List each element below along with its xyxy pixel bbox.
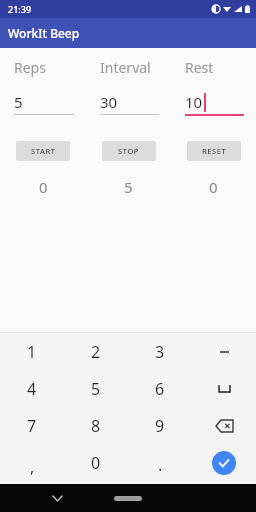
button[interactable]: Done <box>192 444 256 481</box>
staticText: Rest <box>185 58 214 77</box>
button[interactable]: RESET <box>187 141 241 161</box>
staticText: 10 <box>185 92 203 112</box>
staticText: 9 <box>155 415 165 437</box>
staticText: 0 <box>91 452 101 474</box>
staticText: 0 <box>39 177 48 197</box>
staticText: 4 <box>27 378 37 400</box>
button[interactable]: 8 <box>64 407 128 444</box>
staticText: Reps <box>14 58 46 77</box>
staticText: 3 <box>155 341 165 363</box>
button[interactable]: Comma <box>0 444 64 481</box>
staticText: 0 <box>209 177 218 197</box>
staticText: 1 <box>27 341 37 363</box>
staticText: 5 <box>124 177 133 197</box>
button[interactable]: Backspace <box>192 407 256 444</box>
staticText: Interval <box>100 58 151 77</box>
staticText: RESET <box>202 146 227 156</box>
button[interactable]: Dash <box>192 333 256 370</box>
button[interactable]: 2 <box>64 333 128 370</box>
staticText: . <box>158 454 163 476</box>
staticText: WorkIt Beep <box>8 25 80 41</box>
staticText: 30 <box>100 92 118 112</box>
staticText: 7 <box>27 415 37 437</box>
staticText: START <box>31 146 56 156</box>
staticText: , <box>30 456 35 478</box>
button[interactable]: 4 <box>0 370 64 407</box>
button[interactable]: 5 <box>64 370 128 407</box>
button[interactable]: START <box>16 141 70 161</box>
staticText: 2 <box>91 341 101 363</box>
staticText: 21:39 <box>8 3 32 15</box>
button[interactable]: Space <box>192 370 256 407</box>
button[interactable]: Hide keyboard <box>48 489 66 507</box>
button[interactable]: Period <box>128 444 192 481</box>
staticText: 8 <box>91 415 101 437</box>
staticText: 5 <box>91 378 101 400</box>
staticText: STOP <box>118 146 140 156</box>
staticText: 6 <box>155 378 165 400</box>
button[interactable]: 6 <box>128 370 192 407</box>
button[interactable]: 7 <box>0 407 64 444</box>
button[interactable]: Home <box>114 496 142 501</box>
button[interactable]: 0 <box>64 444 128 481</box>
button[interactable]: 3 <box>128 333 192 370</box>
button[interactable]: 9 <box>128 407 192 444</box>
button[interactable]: STOP <box>102 141 156 161</box>
button[interactable]: 1 <box>0 333 64 370</box>
staticText: 5 <box>14 92 23 112</box>
